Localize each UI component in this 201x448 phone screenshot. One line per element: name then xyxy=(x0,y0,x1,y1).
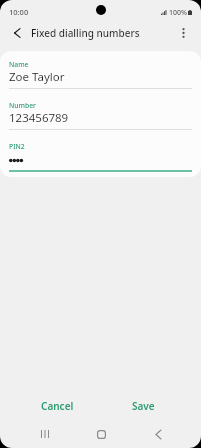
button[interactable]: Cancel xyxy=(14,392,100,420)
button[interactable]: Save xyxy=(100,392,187,420)
staticText: PIN2 xyxy=(9,142,25,151)
button[interactable]: Navigate up xyxy=(3,22,31,43)
button[interactable]: PIN2 xyxy=(0,133,201,174)
staticText: Save xyxy=(132,399,155,413)
staticText: 10:00 xyxy=(9,7,29,17)
staticText: 100% xyxy=(169,8,187,18)
button[interactable]: Name xyxy=(0,51,201,92)
staticText: Cancel xyxy=(41,399,74,413)
button[interactable]: Recent apps xyxy=(31,422,59,446)
button[interactable]: Number xyxy=(0,92,201,133)
staticText: 123456789 xyxy=(9,110,69,126)
staticText: Zoe Taylor xyxy=(9,69,65,85)
staticText: Number xyxy=(9,101,36,110)
staticText: Fixed dialling numbers xyxy=(31,26,140,40)
button[interactable]: Back xyxy=(144,422,172,446)
button[interactable]: Home xyxy=(87,422,115,446)
button[interactable]: More options xyxy=(170,22,196,43)
staticText: Name xyxy=(9,60,29,69)
